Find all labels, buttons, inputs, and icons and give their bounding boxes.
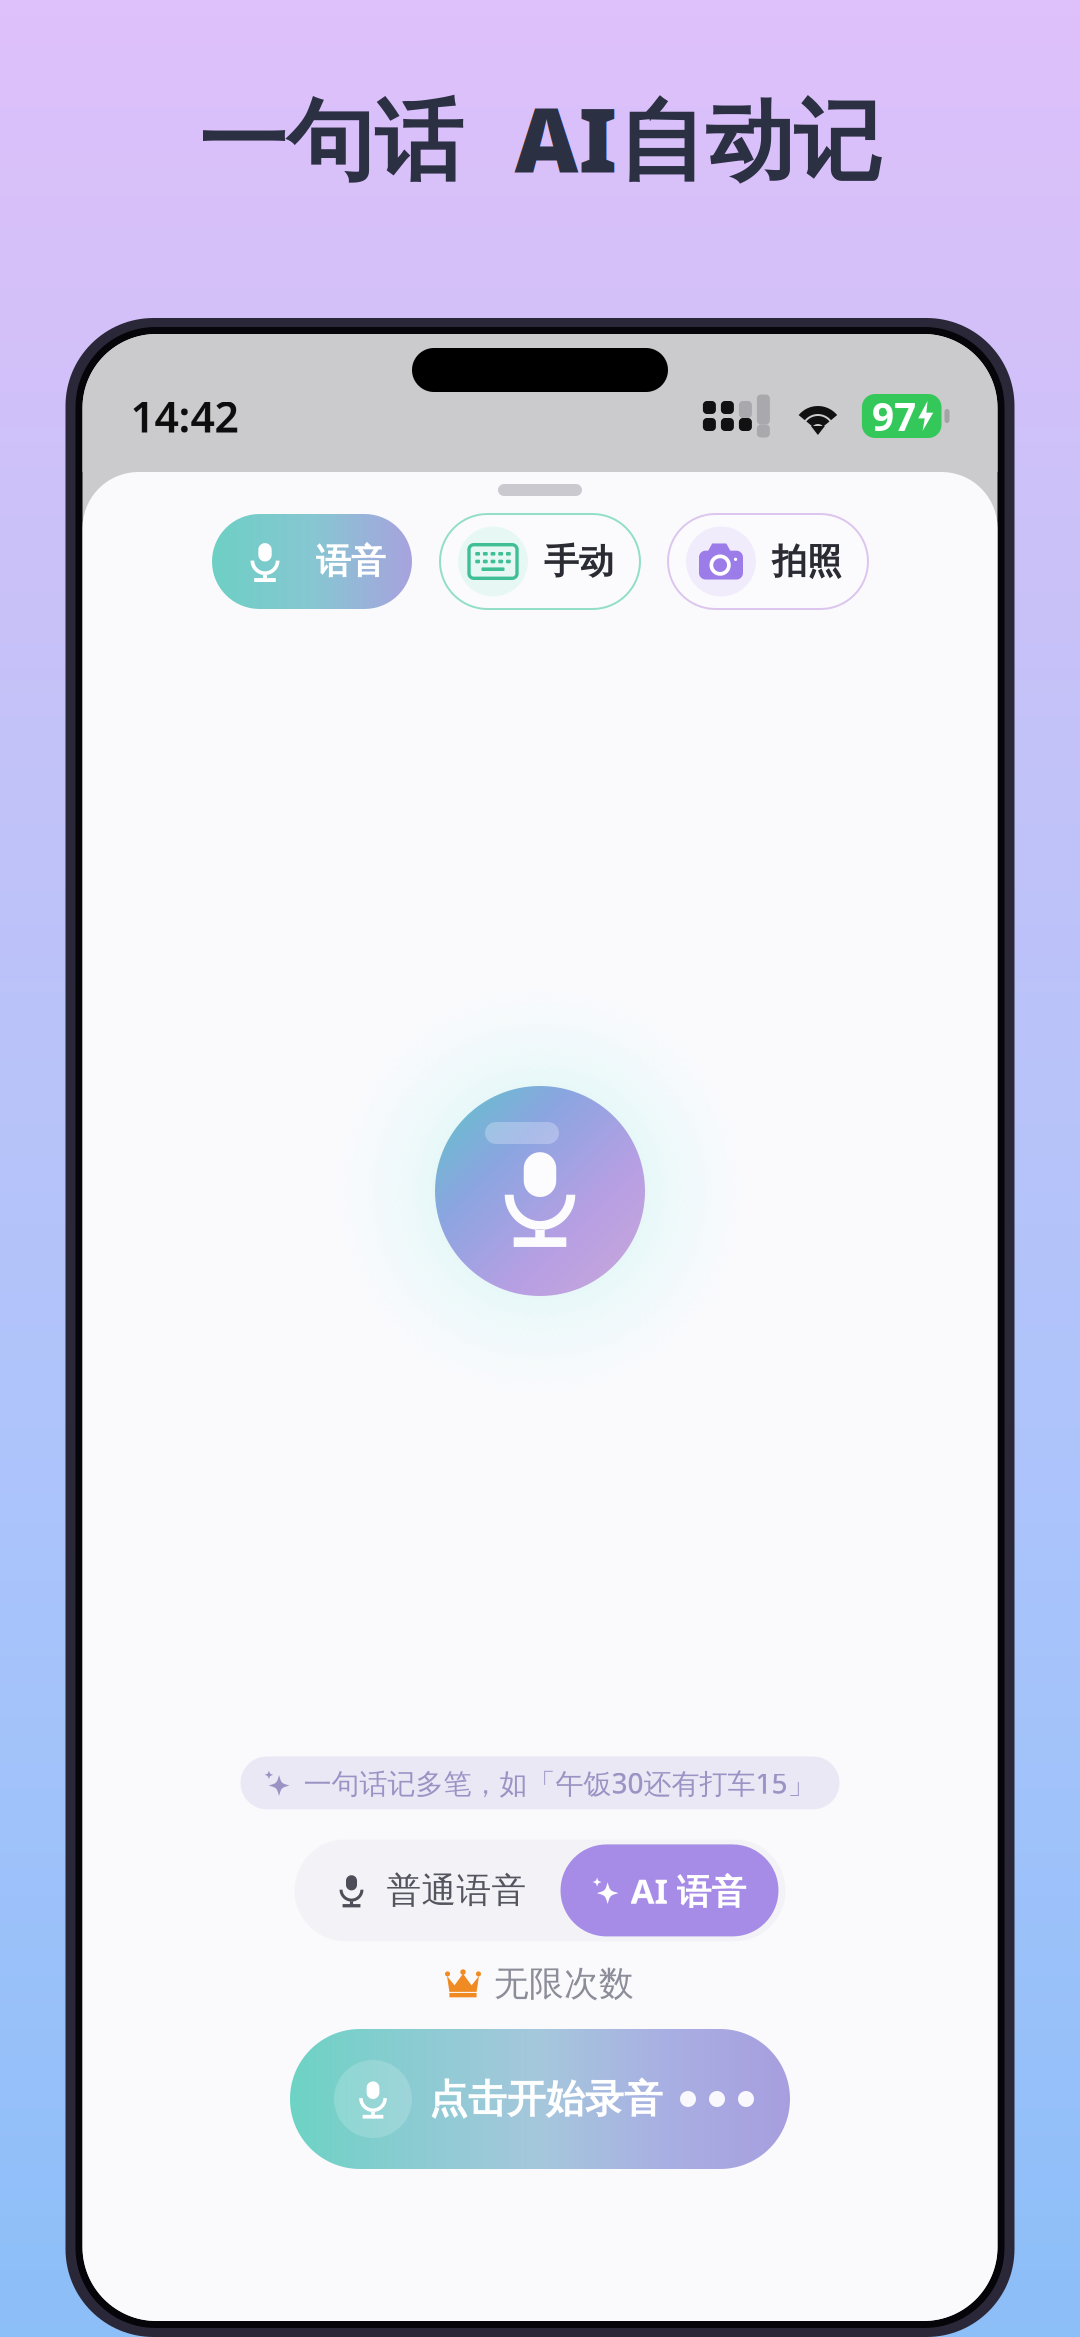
staticText: 一句话 AI自动记: [198, 80, 881, 197]
button[interactable]: 语音: [212, 514, 412, 609]
staticText: 一句话记多笔，如「午饭30还有打车15」: [303, 1764, 815, 1801]
staticText: 点击开始录音: [429, 2075, 663, 2123]
staticText: 手动: [544, 540, 614, 583]
staticText: 语音: [316, 540, 386, 583]
button[interactable]: 普通语音: [294, 1839, 560, 1941]
staticText: 无限次数: [494, 1962, 634, 2005]
button[interactable]: 手动: [440, 514, 640, 609]
button[interactable]: 拍照: [668, 514, 868, 609]
staticText: AI 语音: [630, 1867, 746, 1913]
staticText: 普通语音: [386, 1869, 526, 1912]
button[interactable]: AI 语音: [560, 1844, 778, 1936]
staticText: 14:42: [130, 388, 238, 444]
staticText: 拍照: [772, 540, 842, 583]
button[interactable]: 点击开始录音: [290, 2029, 790, 2169]
staticText: 97: [872, 390, 916, 442]
